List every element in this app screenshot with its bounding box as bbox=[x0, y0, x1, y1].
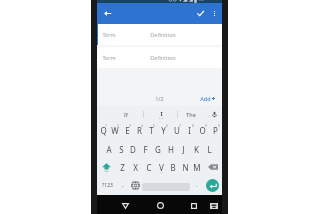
button[interactable]: If bbox=[97, 106, 143, 122]
staticText: K bbox=[194, 144, 199, 155]
staticText: L bbox=[207, 144, 212, 155]
staticText: 2 bbox=[117, 124, 119, 128]
button[interactable]: Done bbox=[193, 6, 208, 21]
staticText: I bbox=[188, 125, 191, 136]
button[interactable]: N bbox=[179, 158, 191, 176]
staticText: 0 bbox=[218, 124, 220, 128]
button[interactable]: Backspace bbox=[203, 158, 222, 176]
staticText: G bbox=[155, 144, 161, 155]
staticText: W bbox=[111, 125, 119, 136]
staticText: Term bbox=[102, 54, 116, 61]
button[interactable]: Enter bbox=[202, 176, 222, 195]
button[interactable]: 2 bbox=[109, 122, 121, 140]
staticText: Q bbox=[100, 125, 107, 136]
staticText: U bbox=[174, 125, 180, 136]
staticText: X bbox=[133, 162, 138, 173]
button[interactable]: Recent apps bbox=[184, 197, 204, 214]
button[interactable]: Z bbox=[116, 158, 129, 176]
button[interactable]: 3 bbox=[121, 122, 133, 140]
staticText: ?123 bbox=[102, 182, 113, 189]
staticText: R bbox=[137, 125, 142, 136]
staticText: , bbox=[122, 181, 124, 188]
button[interactable]: M bbox=[191, 158, 203, 176]
button[interactable]: X bbox=[129, 158, 142, 176]
staticText: Z bbox=[120, 162, 125, 173]
button[interactable]: ?123 bbox=[97, 176, 117, 195]
button[interactable]: 4 bbox=[133, 122, 145, 140]
staticText: S bbox=[119, 144, 124, 155]
button[interactable]: 0 bbox=[209, 122, 222, 140]
button[interactable]: Term bbox=[97, 24, 222, 45]
button[interactable]: Voice input bbox=[206, 106, 222, 122]
button[interactable]: Back bbox=[100, 6, 115, 21]
button[interactable]: V bbox=[155, 158, 167, 176]
staticText: 6 bbox=[166, 124, 168, 128]
staticText: I bbox=[160, 110, 163, 117]
button[interactable]: A bbox=[103, 140, 115, 158]
button[interactable]: 1 bbox=[97, 122, 109, 140]
staticText: The bbox=[186, 111, 196, 118]
staticText: 5 bbox=[153, 124, 155, 128]
button[interactable]: H bbox=[164, 140, 177, 158]
staticText: If bbox=[124, 111, 128, 118]
staticText: C bbox=[146, 162, 152, 173]
button[interactable]: , bbox=[117, 176, 129, 195]
staticText: Term bbox=[102, 31, 116, 38]
staticText: B bbox=[170, 162, 176, 173]
staticText: V bbox=[159, 162, 164, 173]
button[interactable]: F bbox=[139, 140, 151, 158]
button[interactable]: J bbox=[177, 140, 190, 158]
staticText: Definition bbox=[150, 31, 176, 38]
button[interactable]: 9 bbox=[196, 122, 209, 140]
button[interactable]: G bbox=[151, 140, 164, 158]
button[interactable]: B bbox=[167, 158, 179, 176]
staticText: E bbox=[125, 125, 130, 136]
staticText: J bbox=[182, 144, 185, 155]
button[interactable]: Term bbox=[97, 47, 222, 68]
button[interactable]: C bbox=[142, 158, 155, 176]
button[interactable]: 5 bbox=[145, 122, 157, 140]
staticText: N bbox=[182, 162, 189, 173]
staticText: M bbox=[193, 162, 201, 173]
button[interactable]: I bbox=[144, 106, 177, 122]
button[interactable]: The bbox=[178, 106, 206, 122]
button[interactable]: Change language bbox=[129, 176, 141, 195]
staticText: 7 bbox=[179, 124, 181, 128]
staticText: 1 bbox=[105, 124, 107, 128]
staticText: 9 bbox=[205, 124, 207, 128]
button[interactable]: Back bbox=[115, 197, 135, 214]
staticText: D bbox=[130, 144, 136, 155]
staticText: A bbox=[106, 144, 112, 155]
staticText: . bbox=[196, 181, 198, 188]
button[interactable]: L bbox=[203, 140, 216, 158]
button[interactable]: Home bbox=[150, 197, 170, 214]
button[interactable]: Switch keyboard bbox=[206, 197, 222, 214]
staticText: 1/2 bbox=[155, 95, 164, 102]
button[interactable]: 6 bbox=[157, 122, 170, 140]
staticText: Add bbox=[200, 95, 211, 102]
staticText: P bbox=[213, 125, 218, 136]
staticText: H bbox=[168, 144, 174, 155]
staticText: 3 bbox=[129, 124, 131, 128]
staticText: F bbox=[143, 144, 148, 155]
staticText: 8 bbox=[192, 124, 194, 128]
button[interactable]: 7 bbox=[170, 122, 183, 140]
button[interactable]: 8 bbox=[183, 122, 196, 140]
button[interactable]: D bbox=[127, 140, 139, 158]
staticText: Y bbox=[161, 125, 166, 136]
staticText: 4 bbox=[141, 124, 143, 128]
button[interactable]: S bbox=[115, 140, 127, 158]
staticText: O bbox=[199, 125, 206, 136]
button[interactable]: More options bbox=[208, 7, 221, 20]
button[interactable]: Add bbox=[200, 95, 215, 102]
staticText: T bbox=[149, 125, 154, 136]
button[interactable]: Shift bbox=[97, 158, 116, 176]
staticText: Definition bbox=[150, 54, 176, 61]
button[interactable]: K bbox=[190, 140, 203, 158]
